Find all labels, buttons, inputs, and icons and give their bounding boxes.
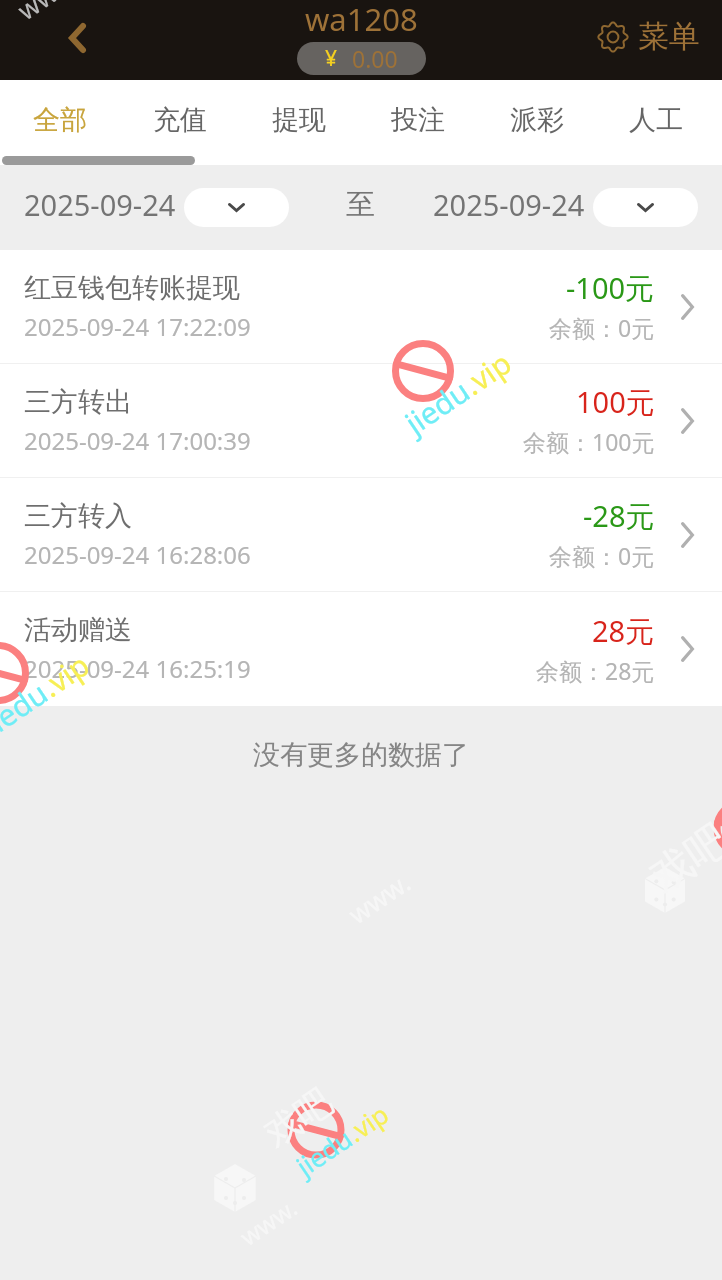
staticText: 余额：28元 xyxy=(536,655,655,686)
staticText: .vip xyxy=(33,644,97,706)
button[interactable]: ¥ xyxy=(297,42,426,75)
staticText: 余额：0元 xyxy=(549,540,655,571)
button[interactable]: Details xyxy=(666,627,708,671)
staticText: ¥ xyxy=(325,44,338,73)
staticText: 派彩 xyxy=(510,103,564,137)
staticText: 三方转出 xyxy=(24,385,132,419)
button[interactable]: 人工 xyxy=(596,85,715,155)
button[interactable]: Details xyxy=(666,513,708,557)
button[interactable]: 投注 xyxy=(358,85,477,155)
staticText: 提现 xyxy=(272,103,326,137)
staticText: jiedu xyxy=(0,672,56,745)
staticText: 戏吧 xyxy=(256,1079,340,1156)
button[interactable]: 全部 xyxy=(0,85,120,155)
button[interactable]: 三方转出 xyxy=(0,364,722,477)
staticText: 菜单 xyxy=(638,17,700,56)
staticText: 0.00 xyxy=(352,43,398,74)
button[interactable]: Details xyxy=(666,399,708,443)
button[interactable]: 充值 xyxy=(120,85,239,155)
button[interactable]: 菜单 xyxy=(594,9,704,64)
staticText: www. xyxy=(10,0,86,27)
staticText: 三方转入 xyxy=(24,499,132,533)
staticText: 2025-09-24 xyxy=(433,185,585,224)
staticText: jiedu xyxy=(289,1120,359,1183)
button[interactable]: 提现 xyxy=(239,85,358,155)
button[interactable]: Details xyxy=(666,285,708,329)
button[interactable]: Select date xyxy=(593,188,698,227)
button[interactable]: Back xyxy=(51,12,103,64)
staticText: 2025-09-24 16:28:06 xyxy=(24,538,251,571)
staticText: 没有更多的数据了 xyxy=(253,738,469,772)
button[interactable]: 三方转入 xyxy=(0,478,722,591)
staticText: .vip xyxy=(340,1096,395,1149)
staticText: 2025-09-24 17:00:39 xyxy=(24,424,251,457)
staticText: wa1208 xyxy=(305,0,418,40)
staticText: .vip xyxy=(455,342,519,404)
staticText: 余额：100元 xyxy=(523,426,655,457)
staticText: 28元 xyxy=(592,611,655,651)
button[interactable]: 派彩 xyxy=(477,85,596,155)
staticText: jiedu xyxy=(397,370,478,443)
staticText: 活动赠送 xyxy=(24,613,132,647)
staticText: 2025-09-24 17:22:09 xyxy=(24,310,251,343)
staticText: -28元 xyxy=(583,496,655,536)
staticText: 人工 xyxy=(629,103,683,137)
staticText: 充值 xyxy=(153,103,207,137)
staticText: 投注 xyxy=(391,103,445,137)
staticText: 余额：0元 xyxy=(549,312,655,343)
button[interactable]: 活动赠送 xyxy=(0,592,722,706)
staticText: 至 xyxy=(346,186,375,223)
staticText: 红豆钱包转账提现 xyxy=(24,271,240,305)
staticText: 戏吧 xyxy=(640,813,722,904)
staticText: 100元 xyxy=(576,382,655,422)
staticText: 全部 xyxy=(33,103,87,137)
button[interactable]: 红豆钱包转账提现 xyxy=(0,250,722,363)
staticText: -100元 xyxy=(566,268,655,308)
button[interactable]: Select date xyxy=(184,188,289,227)
staticText: 2025-09-24 16:25:19 xyxy=(24,652,251,685)
staticText: 2025-09-24 xyxy=(24,185,176,224)
